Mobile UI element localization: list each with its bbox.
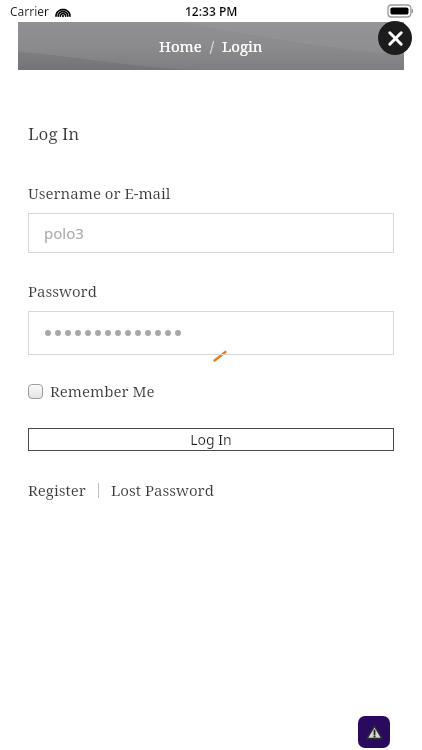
staticText: Username or E-mail xyxy=(28,183,171,203)
staticText: Log In xyxy=(28,122,80,145)
button[interactable]: Remember Me xyxy=(28,381,155,401)
staticText: Remember Me xyxy=(50,381,155,401)
staticText: polo3 xyxy=(44,223,84,243)
staticText: Password xyxy=(28,281,97,301)
button[interactable]: polo3 xyxy=(28,213,394,253)
staticText: Login xyxy=(222,36,263,56)
button[interactable]: Register xyxy=(28,480,86,500)
staticText: Carrier xyxy=(10,3,50,19)
button[interactable]: Home xyxy=(159,36,202,56)
button[interactable] xyxy=(28,311,394,355)
button[interactable]: Log In xyxy=(28,428,394,451)
staticText: 12:33 PM xyxy=(185,3,238,19)
button[interactable]: Warning xyxy=(358,716,390,748)
button[interactable]: Close xyxy=(378,21,412,55)
button[interactable]: Lost Password xyxy=(111,480,214,500)
staticText: Log In xyxy=(190,430,232,449)
staticText: / xyxy=(202,36,222,56)
